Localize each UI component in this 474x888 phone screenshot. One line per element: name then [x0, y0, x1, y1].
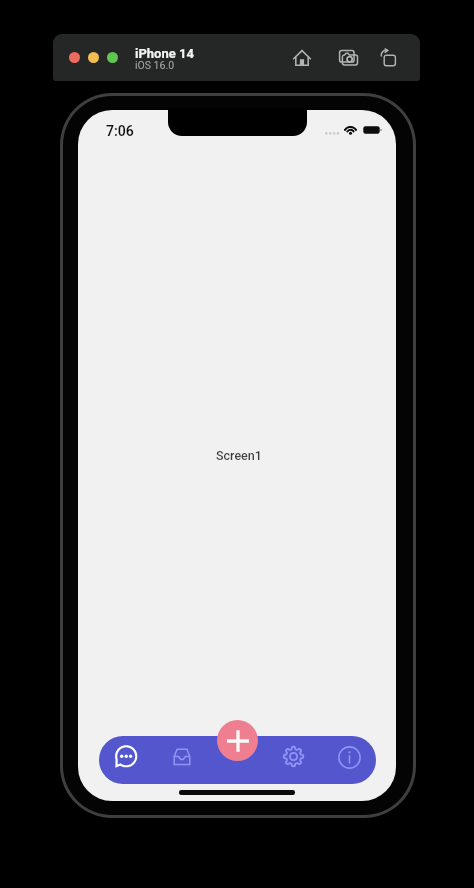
button[interactable]: Info: [331, 739, 367, 775]
button[interactable]: Add: [217, 720, 258, 761]
button[interactable]: Screenshot: [336, 45, 362, 71]
staticText: 7:06: [106, 123, 134, 139]
button[interactable]: Close window: [69, 52, 80, 63]
button[interactable]: Rotate device: [375, 45, 401, 71]
staticText: iPhone 14: [135, 46, 194, 61]
button[interactable]: Inbox: [164, 739, 200, 775]
button[interactable]: Messages: [107, 739, 143, 775]
button[interactable]: Settings: [275, 738, 311, 774]
button[interactable]: Minimize window: [88, 52, 99, 63]
button[interactable]: Zoom window: [107, 52, 118, 63]
button[interactable]: Home: [289, 45, 315, 71]
staticText: Screen1: [216, 448, 262, 463]
staticText: iOS 16.0: [135, 59, 175, 71]
